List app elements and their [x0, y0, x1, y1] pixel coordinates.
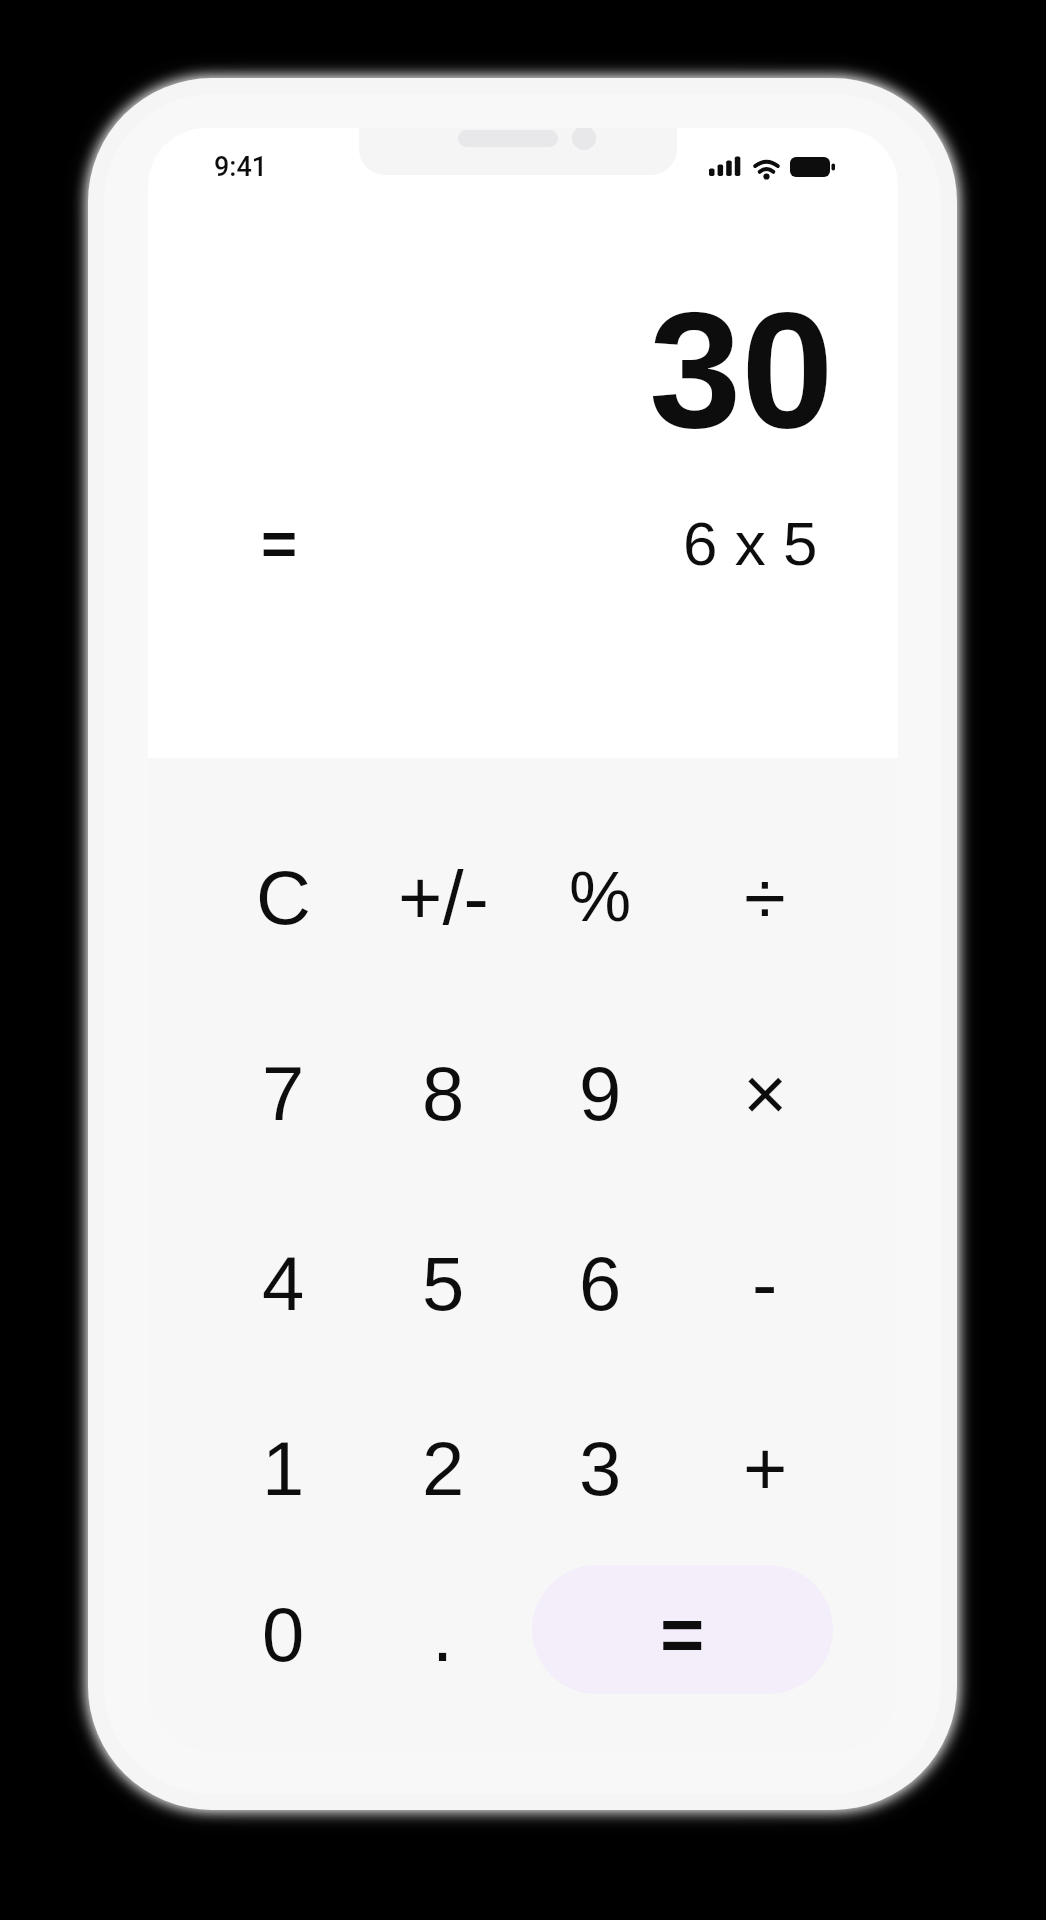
- button[interactable]: 9: [522, 1015, 678, 1171]
- staticText: C: [256, 855, 311, 940]
- button[interactable]: 5: [365, 1205, 521, 1361]
- staticText: 9: [579, 1051, 622, 1136]
- staticText: 8: [422, 1051, 465, 1136]
- staticText: 2: [422, 1426, 465, 1511]
- staticText: =: [261, 509, 298, 578]
- button[interactable]: C: [205, 819, 361, 975]
- staticText: 0: [262, 1592, 305, 1677]
- button[interactable]: .: [365, 1556, 521, 1712]
- staticText: 6: [579, 1241, 622, 1326]
- staticText: -: [752, 1241, 778, 1326]
- staticText: 7: [262, 1051, 305, 1136]
- staticText: 30: [649, 277, 834, 462]
- button[interactable]: 3: [522, 1390, 678, 1546]
- button[interactable]: 6: [522, 1205, 678, 1361]
- staticText: =: [660, 1592, 705, 1677]
- button[interactable]: +: [687, 1390, 843, 1546]
- staticText: 1: [262, 1426, 305, 1511]
- staticText: %: [569, 858, 632, 936]
- button[interactable]: +/-: [365, 819, 521, 975]
- staticText: 9:41: [214, 151, 268, 183]
- button[interactable]: ÷: [687, 819, 843, 975]
- button[interactable]: 0: [205, 1556, 361, 1712]
- staticText: ×: [743, 1051, 788, 1136]
- button[interactable]: 1: [205, 1390, 361, 1546]
- button[interactable]: -: [687, 1205, 843, 1361]
- button[interactable]: 4: [205, 1205, 361, 1361]
- staticText: 6 x 5: [683, 509, 818, 578]
- staticText: +: [743, 1426, 788, 1511]
- staticText: 4: [262, 1241, 305, 1326]
- button[interactable]: 8: [365, 1015, 521, 1171]
- button[interactable]: 2: [365, 1390, 521, 1546]
- staticText: 3: [579, 1426, 622, 1511]
- staticText: 5: [422, 1241, 465, 1326]
- staticText: +/-: [398, 855, 489, 940]
- button[interactable]: ×: [687, 1015, 843, 1171]
- button[interactable]: %: [522, 819, 678, 975]
- staticText: .: [432, 1592, 454, 1677]
- staticText: ÷: [744, 855, 786, 940]
- button[interactable]: 7: [205, 1015, 361, 1171]
- button[interactable]: =: [532, 1565, 833, 1694]
